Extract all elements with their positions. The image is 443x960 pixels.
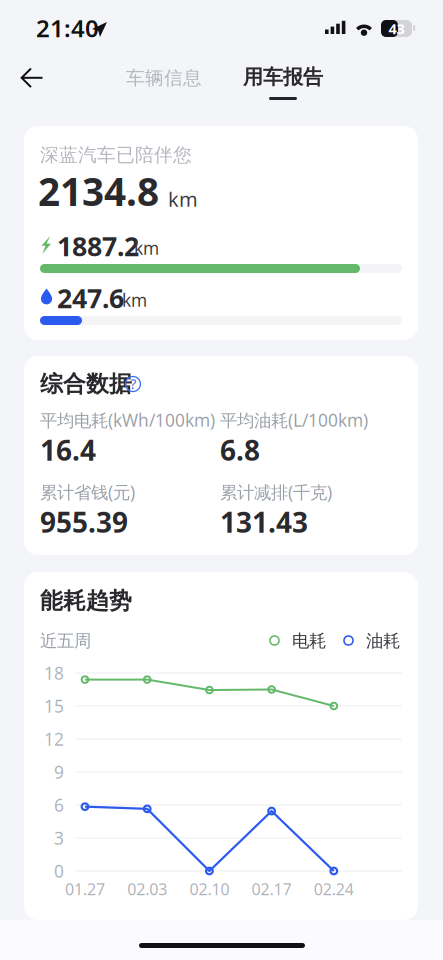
staticText: 12: [44, 727, 64, 750]
staticText: 平均电耗(kWh/100km): [40, 408, 215, 431]
staticText: 电耗: [292, 630, 326, 652]
button[interactable]: Back: [4, 54, 60, 102]
staticText: 131.43: [220, 503, 308, 541]
staticText: 9: [54, 760, 64, 783]
button[interactable]: 数据说明: [119, 370, 147, 398]
staticText: 247.6: [57, 280, 124, 316]
staticText: 油耗: [366, 630, 400, 652]
staticText: 16.4: [40, 431, 96, 469]
staticText: 综合数据: [40, 370, 132, 398]
staticText: 累计省钱(元): [40, 480, 135, 503]
staticText: 02.24: [314, 878, 354, 900]
staticText: 深蓝汽车已陪伴您: [40, 143, 192, 166]
button[interactable]: 车辆信息: [109, 54, 219, 102]
staticText: km: [168, 186, 198, 212]
staticText: 6.8: [220, 431, 260, 469]
button[interactable]: 用车报告: [228, 54, 338, 104]
staticText: 能耗趋势: [40, 587, 132, 615]
staticText: 2134.8: [38, 165, 159, 217]
staticText: 02.03: [127, 878, 167, 900]
staticText: 3: [54, 826, 64, 849]
staticText: 6: [54, 793, 64, 816]
staticText: 955.39: [40, 503, 128, 541]
staticText: 车辆信息: [126, 66, 202, 89]
staticText: 02.10: [189, 878, 229, 900]
staticText: km: [134, 236, 159, 259]
staticText: 近五周: [40, 630, 91, 652]
staticText: ?: [130, 374, 136, 393]
staticText: 15: [44, 694, 64, 717]
staticText: km: [122, 288, 147, 311]
staticText: 平均油耗(L/100km): [220, 408, 368, 431]
staticText: 0: [54, 859, 64, 882]
staticText: 21:40: [36, 12, 99, 44]
staticText: 01.27: [65, 878, 105, 900]
staticText: 1887.2: [57, 228, 139, 264]
staticText: 用车报告: [243, 65, 323, 89]
staticText: 02.17: [252, 878, 292, 900]
staticText: 累计减排(千克): [220, 480, 332, 503]
staticText: 43: [388, 19, 404, 38]
staticText: 18: [44, 661, 64, 684]
